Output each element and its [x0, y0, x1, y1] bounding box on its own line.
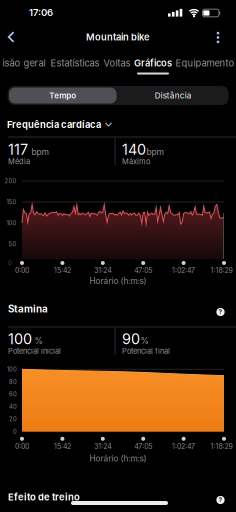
staticText: 47:05 — [134, 442, 152, 451]
staticText: 17:06 — [29, 7, 53, 18]
staticText: bpm — [31, 147, 48, 157]
staticText: 40 — [9, 403, 17, 410]
button[interactable]: More — [217, 32, 219, 43]
staticText: 80 — [9, 378, 17, 385]
staticText: 47:05 — [134, 266, 152, 275]
staticText: 15:42 — [54, 442, 71, 451]
staticText: 20 — [9, 416, 17, 423]
button[interactable]: Gráficos — [134, 57, 172, 69]
button[interactable]: Voltas — [103, 57, 130, 69]
staticText: 60 — [9, 391, 17, 398]
staticText: 15:42 — [54, 266, 71, 275]
staticText: Mountain bike — [86, 31, 150, 43]
staticText: 0 — [8, 259, 12, 267]
staticText: 100 — [7, 366, 17, 373]
staticText: 0 — [13, 428, 17, 435]
staticText: 1:18:29 — [210, 266, 232, 275]
staticText: Gráficos — [134, 57, 172, 69]
staticText: 100 — [8, 330, 32, 348]
staticText: Horário (h:m:s) — [89, 276, 146, 286]
staticText: Efeito de treino — [8, 491, 80, 503]
staticText: 117 — [8, 141, 28, 158]
staticText: 100 — [6, 219, 16, 227]
staticText: Potencial final — [122, 346, 170, 355]
button[interactable]: Tempo — [9, 87, 116, 103]
staticText: Potencial inicial — [8, 346, 61, 355]
staticText: bpm — [146, 147, 163, 157]
staticText: Distância — [155, 91, 192, 100]
staticText: % — [34, 336, 42, 346]
staticText: Stamina — [8, 303, 48, 315]
staticText: 140 — [122, 141, 146, 158]
staticText: 1:02:47 — [172, 266, 195, 275]
staticText: Máximo — [122, 157, 150, 166]
button[interactable]: Back — [8, 31, 15, 42]
button[interactable]: Estatísticas — [50, 57, 99, 69]
staticText: 1:18:29 — [210, 442, 232, 451]
staticText: 90 — [122, 330, 140, 348]
staticText: % — [140, 336, 148, 346]
button[interactable]: Sobre Stamina — [216, 308, 225, 316]
staticText: 1:02:47 — [172, 442, 195, 451]
button[interactable]: Distância — [119, 87, 227, 103]
staticText: 31:24 — [94, 266, 111, 275]
button[interactable]: isão geral — [2, 57, 45, 69]
button[interactable]: Equipamento — [175, 57, 234, 69]
staticText: isão geral — [2, 57, 45, 69]
staticText: Média — [8, 157, 30, 166]
button[interactable]: Frequência cardíaca — [7, 119, 112, 130]
staticText: 31:24 — [94, 442, 111, 451]
staticText: ? — [218, 308, 222, 316]
staticText: Horário (h:m:s) — [89, 453, 146, 463]
staticText: 150 — [6, 198, 16, 206]
staticText: ? — [218, 496, 222, 504]
staticText: Estatísticas — [50, 57, 99, 69]
staticText: Tempo — [49, 91, 76, 100]
button[interactable]: Sobre Efeito de treino — [216, 496, 225, 504]
staticText: 0:00 — [15, 442, 29, 451]
staticText: Voltas — [103, 57, 130, 69]
staticText: Equipamento — [175, 57, 234, 69]
staticText: 0:00 — [15, 266, 29, 275]
staticText: 50 — [8, 240, 16, 248]
staticText: 200 — [4, 177, 16, 185]
staticText: Frequência cardíaca — [7, 119, 101, 130]
